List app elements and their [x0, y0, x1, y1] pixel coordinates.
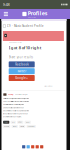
staticText: Tags: [4, 121, 8, 123]
staticText: arts: [12, 121, 15, 123]
staticText: changes: [28, 125, 35, 127]
button[interactable]: Google+: [9, 74, 35, 81]
button[interactable]: Tags: [3, 121, 9, 124]
staticText: · The online Talk Quiz: [15, 94, 28, 95]
staticText: profile free in your region.: [3, 116, 21, 118]
staticText: Google+: [15, 76, 28, 80]
staticText: favourite board works, share your: [3, 113, 28, 115]
staticText: on a full on in their community, get on: [3, 104, 24, 105]
staticText: Profiles: [28, 10, 48, 17]
staticText: I got 8 of 10 right: [9, 45, 42, 50]
button[interactable]: Facebook: [9, 59, 35, 67]
button[interactable]: events: [3, 125, 10, 128]
button[interactable]: offer: [17, 121, 23, 124]
staticText: events: [4, 125, 9, 127]
staticText: become the credits recognised by the: [3, 110, 29, 112]
button[interactable]: Share by email: [40, 145, 43, 148]
staticText: built by Whitfield: [43, 85, 52, 87]
button[interactable]: Twitter: [9, 67, 35, 74]
staticText: Share your results: [9, 55, 33, 59]
staticText: Facebook: [15, 63, 28, 66]
button[interactable]: Share on Google Plus: [31, 145, 34, 148]
button[interactable]: Share on Pinterest: [36, 145, 39, 148]
staticText: Whitfield Tenor, Regional Manager, poste…: [3, 97, 29, 99]
staticText: music: [26, 121, 30, 123]
staticText: your result of the 7th Special Event on …: [3, 101, 29, 102]
staticText: teens: [13, 125, 17, 127]
button[interactable]: music: [25, 121, 31, 124]
staticText: 9:48: [2, 2, 9, 7]
staticText: and have at least an 8 then your: [3, 107, 24, 109]
button[interactable]: arts: [11, 121, 16, 124]
button[interactable]: Share on Twitter: [27, 145, 30, 148]
staticText: Twitter: [17, 69, 26, 73]
staticText: Student quiz results: [9, 42, 22, 43]
button[interactable]: Profiles: [22, 10, 48, 18]
button[interactable]: changes: [27, 125, 36, 128]
button[interactable]: studio: [19, 125, 25, 128]
button[interactable]: Share on Facebook: [22, 145, 25, 148]
staticText: quiz · results: [28, 17, 36, 18]
staticText: studio: [20, 125, 24, 127]
staticText: offer: [18, 121, 22, 123]
staticText: Bobbie Jo: [8, 94, 14, 95]
button[interactable]: teens: [12, 125, 18, 128]
button[interactable]: Menu: [1, 9, 10, 19]
staticText: C9 · Music Student Profile: [7, 24, 44, 28]
